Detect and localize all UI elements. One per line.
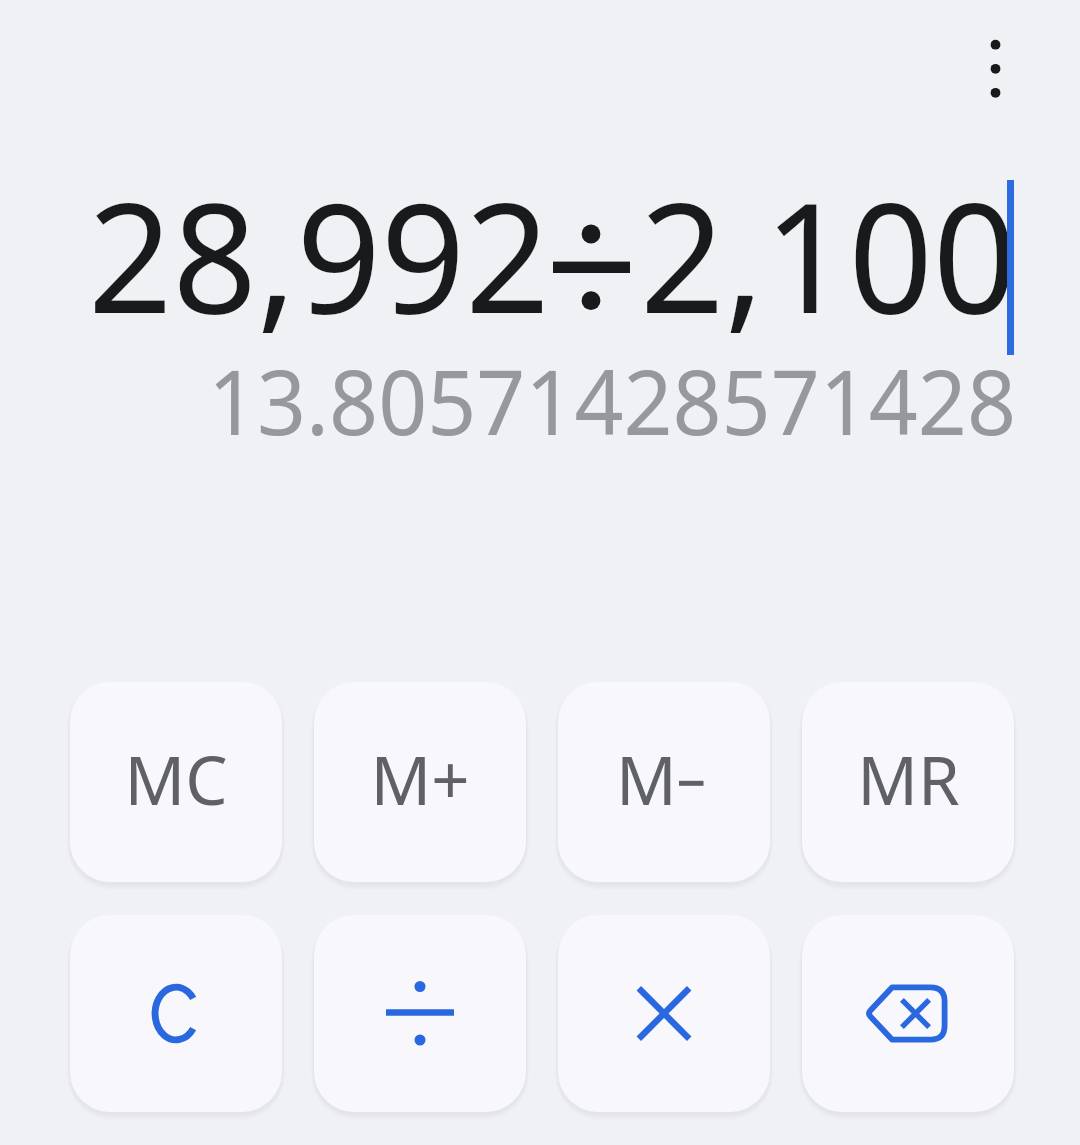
staticText: MR (857, 733, 960, 824)
staticText: MC (124, 733, 228, 824)
button[interactable]: Multiply (558, 915, 770, 1112)
staticText: M+ (370, 733, 470, 824)
button[interactable]: MR (802, 682, 1014, 882)
button[interactable]: M+ (314, 682, 526, 882)
button[interactable]: MC (70, 682, 282, 882)
button[interactable]: Divide (314, 915, 526, 1112)
button[interactable]: More options (948, 6, 1043, 132)
staticText: 28,992 (88, 151, 550, 358)
staticText: M (616, 733, 677, 824)
staticText: 2,100 (640, 151, 1018, 358)
button[interactable]: Backspace (802, 915, 1014, 1112)
button[interactable]: Memory subtract (558, 682, 770, 882)
button[interactable]: Clear (70, 915, 282, 1112)
staticText: 13.80571428571428 (208, 339, 1016, 462)
